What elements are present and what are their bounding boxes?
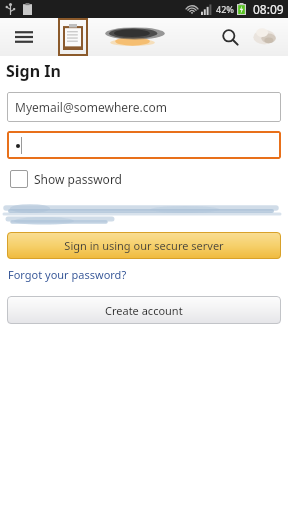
- button[interactable]: Create account: [7, 296, 281, 324]
- button[interactable]: Menu: [8, 21, 40, 53]
- staticText: Forgot your password?: [8, 267, 127, 282]
- button[interactable]: Forgot your password?: [8, 267, 127, 282]
- staticText: Show password: [34, 171, 122, 187]
- staticText: 42%: [216, 3, 234, 15]
- button[interactable]: Clipboard: [58, 18, 88, 56]
- staticText: 08:09: [253, 1, 284, 17]
- button[interactable]: Sign in using our secure server: [7, 232, 281, 259]
- staticText: Sign In: [6, 60, 61, 82]
- staticText: Sign in using our secure server: [64, 238, 224, 253]
- button[interactable]: Myemail@somewhere.com: [7, 92, 281, 122]
- staticText: Create account: [105, 303, 183, 318]
- button[interactable]: Profile: [250, 22, 280, 52]
- button[interactable]: Show password: [10, 170, 122, 188]
- staticText: Myemail@somewhere.com: [15, 99, 168, 115]
- button[interactable]: Search: [214, 21, 246, 53]
- button[interactable]: [7, 131, 281, 159]
